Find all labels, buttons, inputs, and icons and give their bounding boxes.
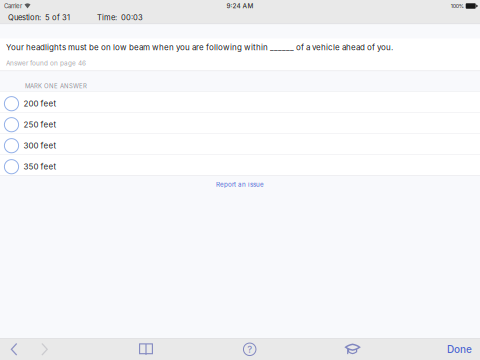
button[interactable]: Handbook xyxy=(128,339,164,360)
staticText: Answer found on page 46 xyxy=(6,59,86,67)
staticText: Time: 00:03 xyxy=(97,13,143,22)
button[interactable]: Done xyxy=(441,339,478,360)
staticText: Your headlights must be on low beam when… xyxy=(6,42,393,52)
staticText: 350 feet xyxy=(24,162,57,171)
button[interactable]: 200 feet xyxy=(0,92,480,113)
staticText: 300 feet xyxy=(24,141,57,150)
button[interactable]: Previous question xyxy=(0,339,28,360)
staticText: MARK ONE ANSWER xyxy=(25,82,87,90)
button[interactable]: Next question xyxy=(28,339,61,360)
staticText: Question: 5 of 31 xyxy=(8,13,70,22)
button[interactable]: 350 feet xyxy=(0,155,480,176)
staticText: Done xyxy=(447,343,472,355)
staticText: 9:24 AM xyxy=(226,2,253,10)
staticText: Report an issue xyxy=(216,181,264,188)
staticText: 250 feet xyxy=(24,120,57,129)
staticText: 100% xyxy=(451,3,464,9)
staticText: Carrier xyxy=(4,2,22,10)
button[interactable]: Report an issue xyxy=(206,176,274,192)
button[interactable]: Study xyxy=(332,339,368,360)
button[interactable]: Help xyxy=(230,339,266,360)
staticText: 200 feet xyxy=(24,99,57,108)
staticText: ? xyxy=(247,344,252,355)
button[interactable]: 300 feet xyxy=(0,134,480,155)
button[interactable]: 250 feet xyxy=(0,113,480,134)
